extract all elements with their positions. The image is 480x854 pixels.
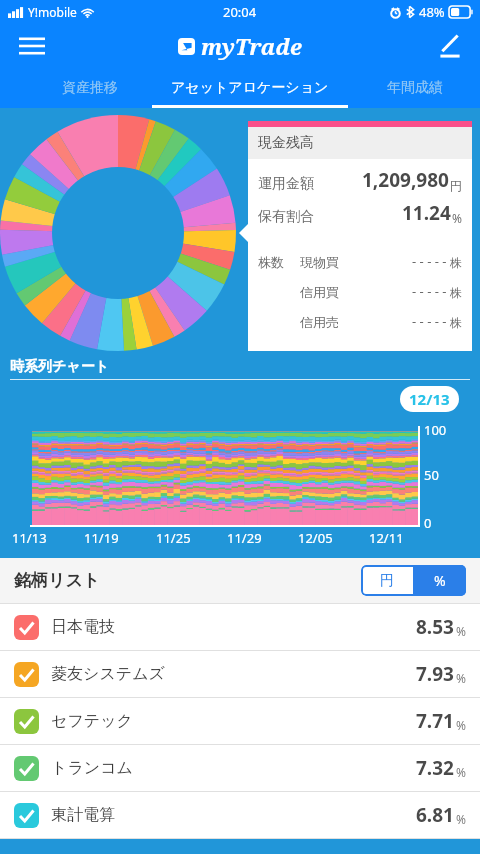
staticText: 12/11	[369, 529, 404, 547]
staticText: - - - - -	[412, 252, 447, 270]
staticText: 8.53	[416, 614, 454, 640]
staticText: 100	[424, 421, 447, 439]
staticText: %	[452, 210, 462, 226]
staticText: 時系列チャート	[10, 358, 109, 376]
staticText: 運用金額	[258, 175, 314, 193]
button[interactable]: %	[413, 565, 466, 596]
staticText: 7.32	[416, 755, 454, 781]
staticText: 20:04	[223, 3, 257, 21]
staticText: 1,209,980	[362, 167, 449, 193]
staticText: 50	[424, 466, 439, 484]
staticText: %	[456, 764, 466, 780]
button[interactable]: 円	[361, 565, 413, 596]
staticText: 円	[380, 572, 394, 590]
staticText: 現金残高	[258, 134, 314, 152]
staticText: %	[456, 670, 466, 686]
button[interactable]: 資産推移	[30, 68, 150, 108]
staticText: %	[456, 811, 466, 827]
staticText: 菱友システムズ	[51, 664, 165, 684]
staticText: 東計電算	[51, 805, 115, 825]
staticText: トランコム	[51, 758, 133, 778]
staticText: 現物買	[300, 254, 339, 270]
staticText: 銘柄リスト	[14, 570, 101, 591]
staticText: 12/13	[409, 389, 450, 409]
staticText: 12/05	[298, 529, 333, 547]
staticText: 11.24	[402, 200, 451, 226]
button[interactable]: 年間成績	[350, 68, 480, 108]
staticText: 11/29	[227, 529, 262, 547]
staticText: - - - - -	[412, 282, 447, 300]
staticText: 7.71	[416, 708, 454, 734]
staticText: 株	[450, 285, 462, 300]
staticText: 日本電技	[51, 617, 115, 637]
staticText: 円	[450, 178, 462, 193]
staticText: 株	[450, 315, 462, 330]
staticText: 11/25	[156, 529, 191, 547]
staticText: 保有割合	[258, 208, 314, 226]
staticText: 信用売	[300, 314, 339, 330]
staticText: 0	[424, 514, 432, 532]
staticText: 株	[450, 255, 462, 270]
staticText: 年間成績	[387, 79, 443, 97]
staticText: %	[456, 623, 466, 639]
button[interactable]: 東計電算	[0, 792, 480, 838]
button[interactable]: Edit	[428, 24, 472, 68]
staticText: %	[434, 571, 446, 590]
staticText: Y!mobile	[28, 4, 77, 20]
staticText: 11/19	[84, 529, 119, 547]
staticText: - - - - -	[412, 312, 447, 330]
button[interactable]: 12/13	[409, 389, 450, 409]
button[interactable]: 日本電技	[0, 604, 480, 650]
staticText: 6.81	[416, 802, 454, 828]
staticText: セフテック	[51, 711, 133, 731]
button[interactable]: トランコム	[0, 745, 480, 791]
button[interactable]: アセットアロケーション	[150, 68, 350, 108]
staticText: 48%	[419, 3, 445, 21]
staticText: 株数	[258, 254, 284, 270]
staticText: アセットアロケーション	[171, 79, 329, 97]
staticText: 信用買	[300, 284, 339, 300]
button[interactable]: Menu	[10, 24, 54, 68]
staticText: 資産推移	[62, 79, 118, 97]
staticText: 7.93	[416, 661, 454, 687]
staticText: myTrade	[201, 31, 302, 61]
button[interactable]: 菱友システムズ	[0, 651, 480, 697]
staticText: 11/13	[12, 529, 47, 547]
staticText: %	[456, 717, 466, 733]
button[interactable]: セフテック	[0, 698, 480, 744]
